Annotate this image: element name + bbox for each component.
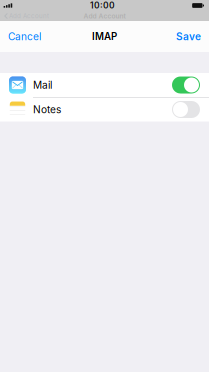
staticText: 10:00 — [90, 0, 115, 11]
staticText: Mail — [33, 79, 52, 91]
staticText: IMAP — [92, 31, 117, 42]
button[interactable]: Cancel — [0, 21, 49, 52]
staticText: Cancel — [8, 30, 41, 43]
button[interactable]: Notes — [0, 97, 209, 121]
staticText: Notes — [33, 103, 61, 116]
staticText: Add Account — [9, 12, 49, 20]
staticText: Add Account — [83, 12, 125, 20]
button[interactable]: Mail — [0, 73, 209, 97]
staticText: Save — [176, 30, 201, 43]
button[interactable]: Save — [168, 21, 209, 52]
